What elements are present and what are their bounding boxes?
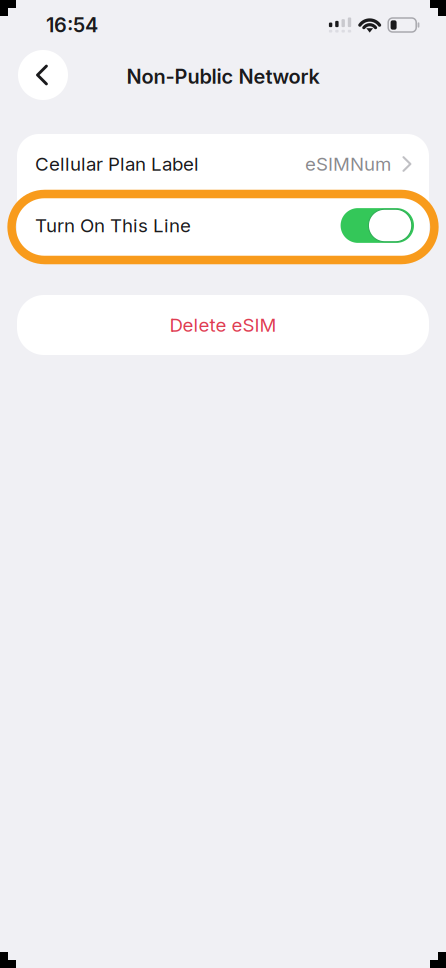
button[interactable]: Back: [18, 50, 68, 100]
button[interactable]: Delete eSIM: [17, 295, 429, 355]
staticText: Cellular Plan Label: [35, 153, 199, 175]
staticText: 16:54: [46, 13, 98, 37]
staticText: Delete eSIM: [169, 314, 276, 336]
staticText: eSIMNum: [305, 153, 391, 175]
button[interactable]: Turn On This Line: [17, 194, 429, 260]
staticText: Non-Public Network: [126, 64, 319, 89]
button[interactable]: Cellular Plan Label: [17, 134, 429, 194]
staticText: Turn On This Line: [35, 214, 191, 237]
